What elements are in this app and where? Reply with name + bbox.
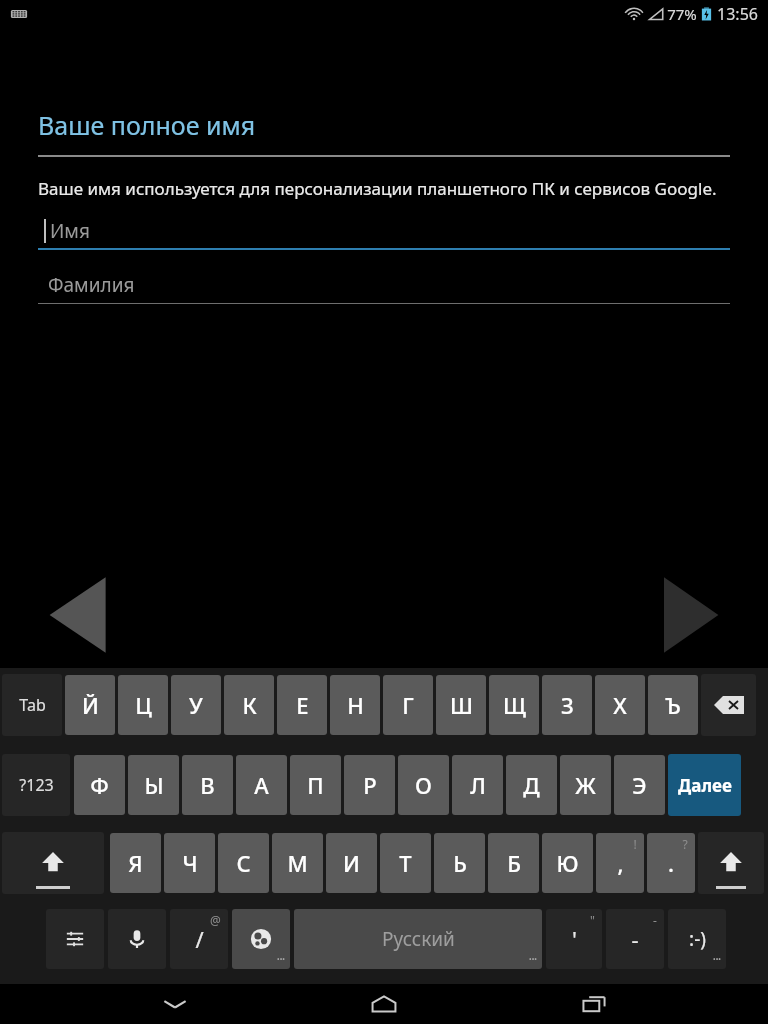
button[interactable]: Н bbox=[330, 675, 380, 735]
button[interactable]: Удалить bbox=[701, 674, 756, 736]
staticText: Л bbox=[470, 770, 486, 800]
staticText: ' bbox=[572, 924, 577, 954]
button[interactable]: М bbox=[272, 833, 323, 893]
staticText: Ваше полное имя bbox=[38, 108, 256, 142]
button[interactable]: Недавние приложения bbox=[559, 984, 629, 1024]
button[interactable]: Л bbox=[452, 755, 503, 815]
button[interactable]: Shift bbox=[698, 832, 764, 894]
button[interactable]: ' bbox=[546, 909, 602, 969]
button[interactable]: Русский bbox=[294, 909, 542, 969]
button[interactable]: Я bbox=[110, 833, 161, 893]
button[interactable]: Ь bbox=[434, 833, 485, 893]
button[interactable]: Й bbox=[65, 675, 115, 735]
staticText: Ъ bbox=[665, 690, 681, 720]
button[interactable]: Назад bbox=[40, 570, 120, 660]
staticText: И bbox=[343, 848, 360, 878]
button[interactable]: Р bbox=[344, 755, 395, 815]
button[interactable]: З bbox=[542, 675, 592, 735]
staticText: У bbox=[189, 690, 203, 720]
staticText: ••• bbox=[713, 955, 721, 965]
button[interactable]: А bbox=[236, 755, 287, 815]
staticText: Н bbox=[347, 690, 364, 720]
button[interactable]: Скрыть клавиатуру bbox=[140, 984, 210, 1024]
button[interactable]: Т bbox=[380, 833, 431, 893]
button[interactable]: Ж bbox=[560, 755, 611, 815]
button[interactable]: Ф bbox=[74, 755, 125, 815]
button[interactable]: Настройки bbox=[46, 909, 104, 969]
staticText: З bbox=[561, 690, 574, 720]
button[interactable]: К bbox=[224, 675, 274, 735]
button[interactable]: Ю bbox=[542, 833, 593, 893]
staticText: Ч bbox=[182, 848, 198, 878]
staticText: Э bbox=[632, 770, 647, 800]
button[interactable]: Э bbox=[614, 755, 665, 815]
staticText: Й bbox=[82, 690, 99, 720]
staticText: Фамилия bbox=[48, 272, 135, 298]
staticText: ?123 bbox=[19, 774, 54, 796]
button[interactable]: Г bbox=[383, 675, 433, 735]
staticText: / bbox=[195, 924, 204, 954]
staticText: Щ bbox=[503, 690, 526, 720]
staticText: А bbox=[254, 770, 269, 800]
staticText: В bbox=[200, 770, 215, 800]
staticText: ! bbox=[633, 836, 637, 852]
staticText: Имя bbox=[50, 218, 90, 244]
staticText: Tab bbox=[19, 694, 46, 716]
button[interactable]: Ъ bbox=[648, 675, 698, 735]
staticText: ? bbox=[682, 836, 688, 852]
staticText: :-) bbox=[689, 926, 706, 952]
button[interactable]: Х bbox=[595, 675, 645, 735]
staticText: Р bbox=[363, 770, 377, 800]
button[interactable]: С bbox=[218, 833, 269, 893]
staticText: ••• bbox=[529, 955, 537, 965]
staticText: Г bbox=[402, 690, 414, 720]
staticText: Ж bbox=[575, 770, 596, 800]
button[interactable]: Имя bbox=[38, 212, 730, 250]
button[interactable]: У bbox=[171, 675, 221, 735]
button[interactable]: :-) bbox=[668, 909, 726, 969]
staticText: " bbox=[590, 912, 595, 928]
staticText: 13:56 bbox=[717, 3, 758, 25]
staticText: Ваше имя используется для персонализации… bbox=[38, 177, 717, 200]
button[interactable]: / bbox=[170, 909, 228, 969]
button[interactable]: Ш bbox=[436, 675, 486, 735]
button[interactable]: Shift bbox=[2, 832, 104, 894]
button[interactable]: . bbox=[647, 833, 695, 893]
button[interactable]: ?123 bbox=[2, 754, 70, 816]
staticText: Т bbox=[399, 848, 412, 878]
button[interactable]: Б bbox=[488, 833, 539, 893]
button[interactable]: Ч bbox=[164, 833, 215, 893]
button[interactable]: Голосовой ввод bbox=[108, 909, 166, 969]
staticText: Ц bbox=[135, 690, 152, 720]
button[interactable]: И bbox=[326, 833, 377, 893]
button[interactable]: Е bbox=[277, 675, 327, 735]
button[interactable]: О bbox=[398, 755, 449, 815]
staticText: Ф bbox=[90, 770, 109, 800]
button[interactable]: Tab bbox=[2, 674, 62, 736]
staticText: Русский bbox=[382, 926, 455, 952]
button[interactable]: Далее bbox=[648, 570, 728, 660]
staticText: 77% bbox=[667, 4, 697, 24]
staticText: - bbox=[653, 912, 657, 928]
staticText: К bbox=[242, 690, 257, 720]
button[interactable]: Фамилия bbox=[38, 266, 730, 304]
staticText: Х bbox=[613, 690, 627, 720]
button[interactable]: , bbox=[596, 833, 644, 893]
button[interactable]: Ц bbox=[118, 675, 168, 735]
button[interactable]: Ы bbox=[128, 755, 179, 815]
button[interactable]: Главный экран bbox=[349, 984, 419, 1024]
staticText: Б bbox=[507, 848, 521, 878]
button[interactable]: Д bbox=[506, 755, 557, 815]
staticText: Е bbox=[296, 690, 309, 720]
staticText: П bbox=[307, 770, 324, 800]
button[interactable]: П bbox=[290, 755, 341, 815]
button[interactable]: - bbox=[606, 909, 664, 969]
staticText: Ю bbox=[556, 848, 579, 878]
staticText: Далее bbox=[678, 774, 732, 797]
button[interactable]: В bbox=[182, 755, 233, 815]
button[interactable]: Щ bbox=[489, 675, 539, 735]
button[interactable]: Сменить язык bbox=[232, 909, 290, 969]
staticText: Ы bbox=[144, 770, 164, 800]
staticText: С bbox=[236, 848, 251, 878]
button[interactable]: Далее bbox=[668, 754, 741, 816]
